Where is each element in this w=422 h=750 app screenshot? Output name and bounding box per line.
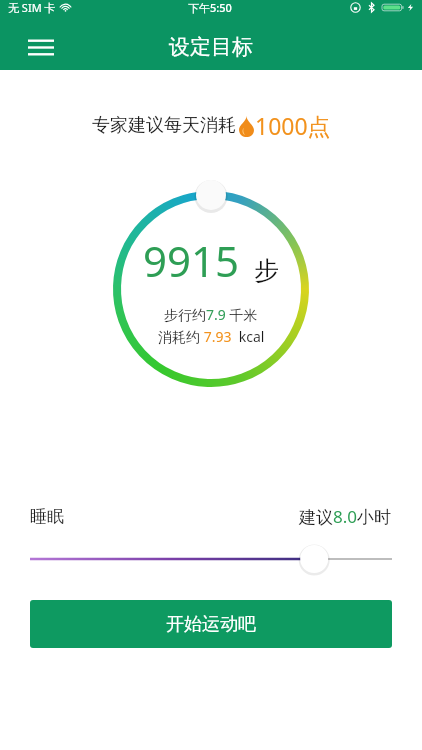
- button[interactable]: Menu: [18, 24, 64, 70]
- staticText: 1000点: [255, 110, 331, 141]
- staticText: 下午5:50: [188, 0, 232, 15]
- staticText: 睡眠: [30, 506, 64, 527]
- staticText: 设定目标: [169, 34, 253, 60]
- staticText: 消耗约 7.93 kcal: [158, 327, 265, 346]
- button[interactable]: 开始运动吧: [30, 600, 392, 648]
- staticText: 建议8.0小时: [299, 505, 392, 528]
- staticText: 专家建议每天消耗: [92, 114, 236, 137]
- staticText: 9915: [143, 232, 240, 289]
- button[interactable]: Sleep hours slider: [30, 544, 392, 574]
- staticText: 步: [254, 255, 279, 286]
- staticText: 步行约7.9 千米: [164, 305, 258, 324]
- staticText: 开始运动吧: [166, 613, 256, 636]
- staticText: 无 SIM 卡: [8, 0, 56, 15]
